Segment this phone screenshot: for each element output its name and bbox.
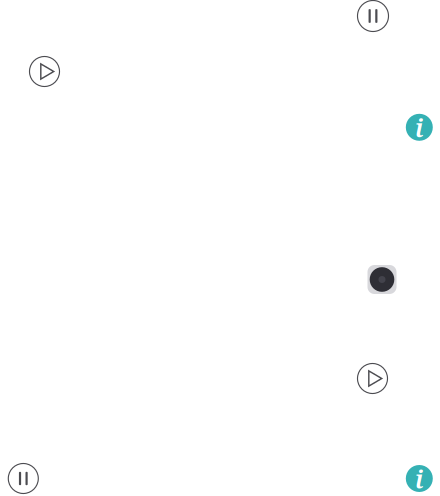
button[interactable]: Play voice message bbox=[29, 56, 59, 86]
staticText: i bbox=[415, 110, 424, 145]
button[interactable]: Pause voice message bbox=[357, 0, 388, 31]
staticText: i bbox=[415, 461, 424, 496]
button[interactable]: Message info bbox=[406, 114, 433, 141]
button[interactable]: Photo attachment bbox=[367, 265, 396, 294]
button[interactable]: Play voice message bbox=[357, 363, 387, 393]
button[interactable]: Pause voice message bbox=[8, 463, 38, 493]
button[interactable]: Message info bbox=[406, 465, 433, 492]
